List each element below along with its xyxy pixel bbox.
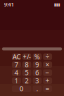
button[interactable]: 6 xyxy=(33,69,42,76)
staticText: 7 xyxy=(14,60,18,69)
staticText: . xyxy=(36,84,38,93)
button[interactable]: 5 xyxy=(22,69,31,76)
staticText: AC xyxy=(12,52,20,61)
button[interactable]: 4 xyxy=(12,69,21,76)
staticText: 1 xyxy=(14,76,18,85)
staticText: 5 xyxy=(25,68,29,77)
staticText: 8 xyxy=(25,60,29,69)
button[interactable]: × xyxy=(43,61,52,68)
staticText: ÷ xyxy=(46,52,50,61)
staticText: + xyxy=(46,76,50,85)
staticText: % xyxy=(34,52,40,61)
button[interactable]: 9 xyxy=(33,61,42,68)
button[interactable]: AC xyxy=(12,53,21,60)
button[interactable]: + xyxy=(43,77,52,84)
button[interactable]: = xyxy=(43,85,52,92)
staticText: 0 xyxy=(20,84,24,93)
button[interactable]: − xyxy=(43,69,52,76)
staticText: 9 xyxy=(35,60,39,69)
staticText: = xyxy=(46,84,50,93)
button[interactable]: 3 xyxy=(33,77,42,84)
staticText: +/- xyxy=(23,52,31,61)
button[interactable]: ÷ xyxy=(43,53,52,60)
button[interactable]: % xyxy=(33,53,42,60)
button[interactable]: . xyxy=(33,85,42,92)
staticText: 9:41 xyxy=(4,1,14,8)
button[interactable]: 0 xyxy=(12,85,31,92)
button[interactable]: 8 xyxy=(22,61,31,68)
staticText: 6 xyxy=(35,68,39,77)
staticText: × xyxy=(46,60,50,69)
button[interactable]: +/- xyxy=(22,53,31,60)
staticText: 4 xyxy=(14,68,18,77)
button[interactable]: 1 xyxy=(12,77,21,84)
button[interactable]: 7 xyxy=(12,61,21,68)
staticText: 2 xyxy=(25,76,29,85)
button[interactable]: 2 xyxy=(22,77,31,84)
staticText: − xyxy=(46,68,50,77)
staticText: ▮▮▮ xyxy=(54,2,60,7)
staticText: 3 xyxy=(35,76,39,85)
